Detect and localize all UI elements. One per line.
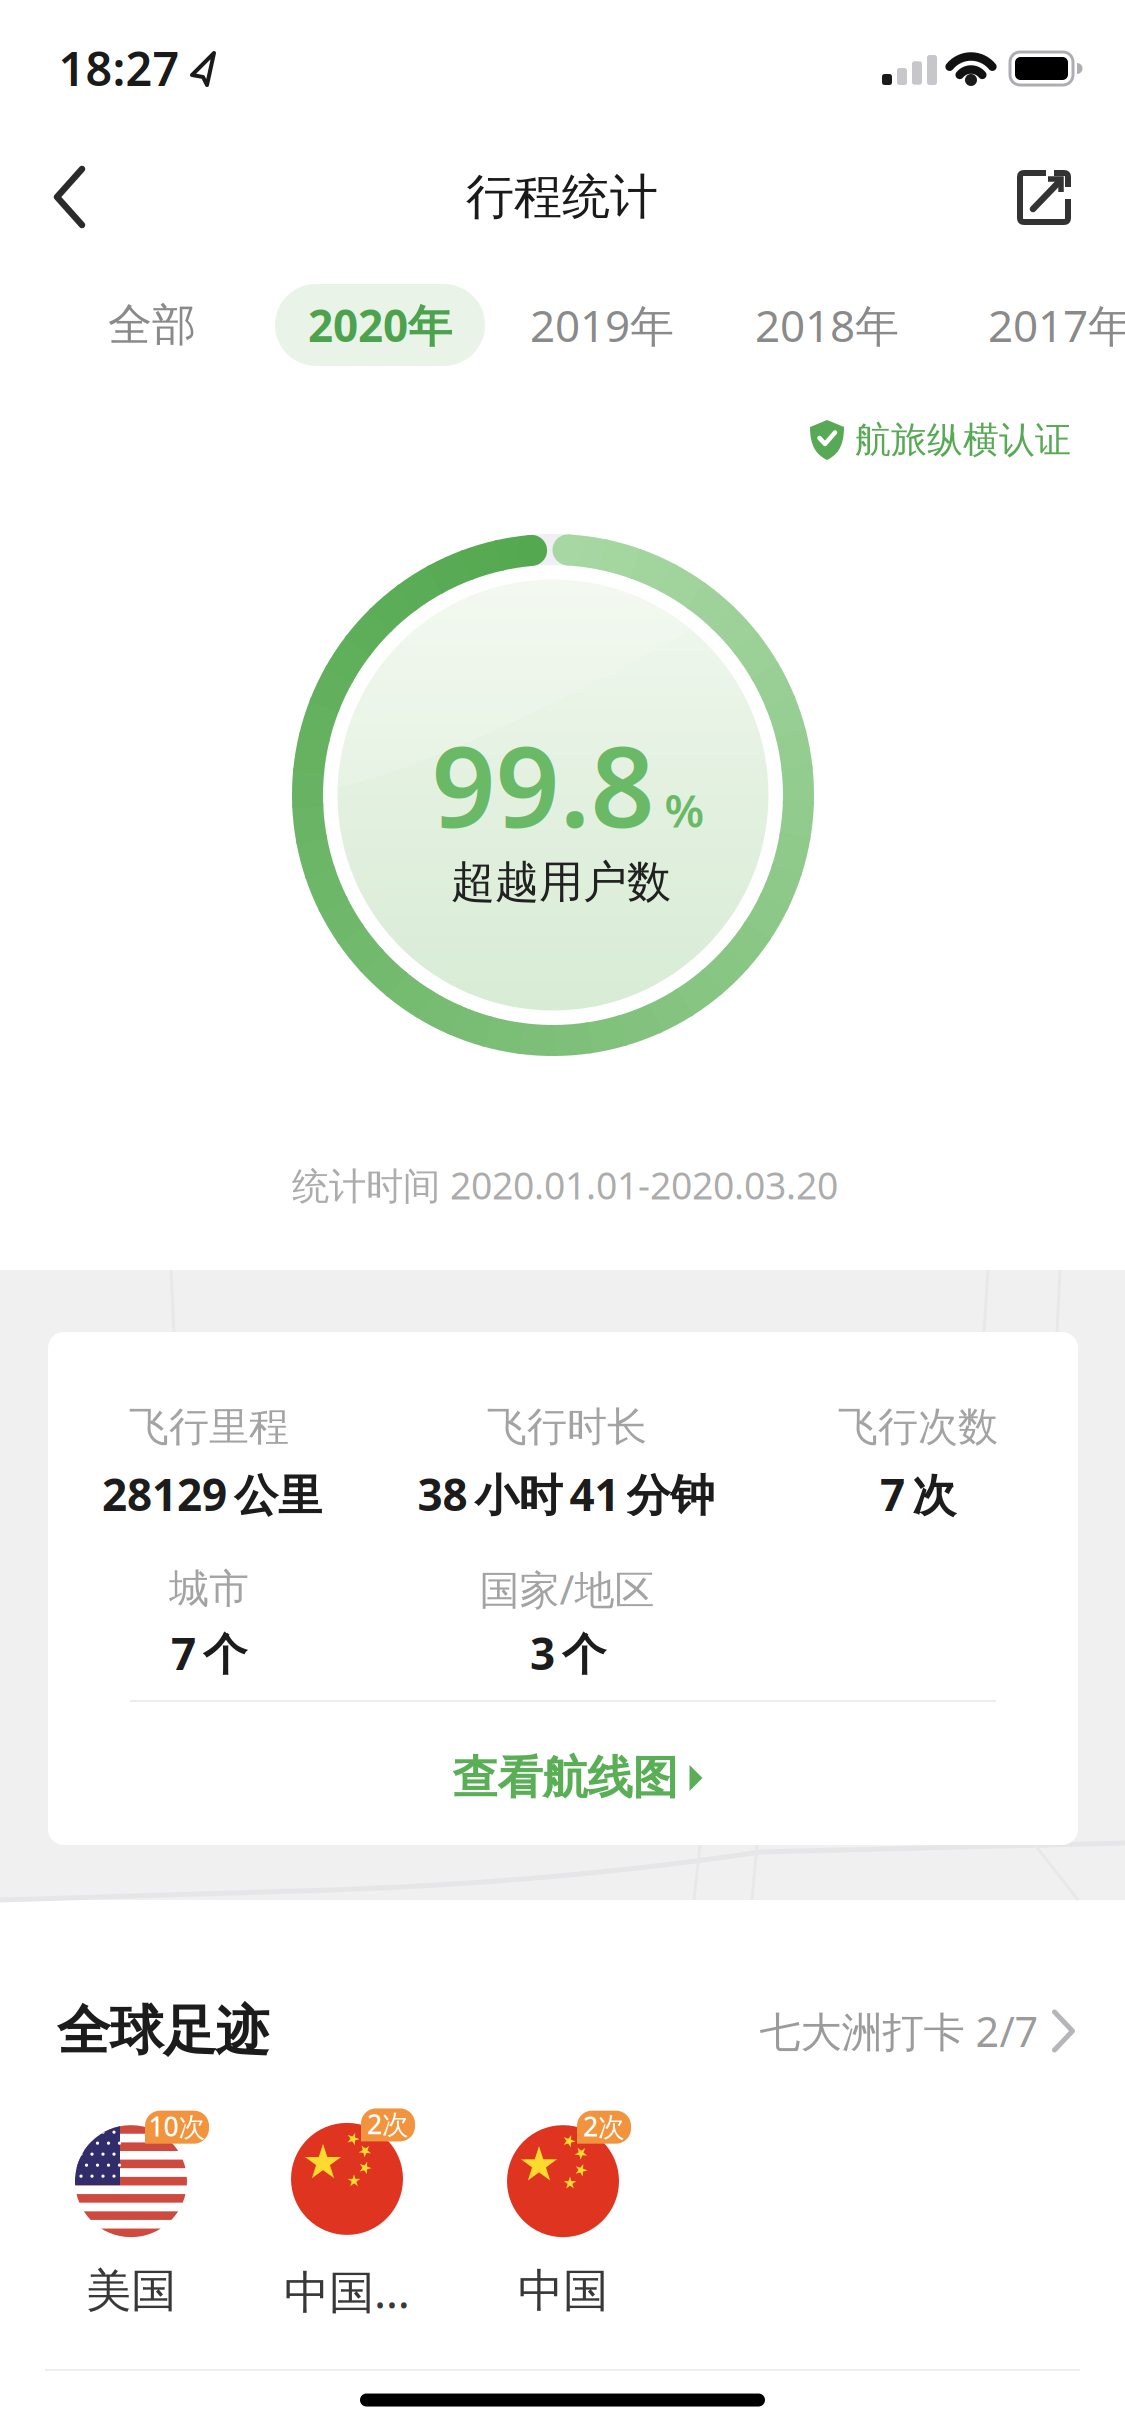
staticText: 3 个 [530, 1624, 606, 1682]
staticText: 7 个 [171, 1624, 247, 1682]
staticText: 查看航线图 [452, 1750, 677, 1806]
staticText: 中国 [518, 2263, 608, 2319]
button[interactable]: Share [1012, 165, 1076, 229]
button[interactable]: 2019年 [512, 283, 692, 367]
button[interactable]: 2018年 [737, 283, 917, 367]
staticText: 2018年 [755, 296, 899, 354]
staticText: 10次 [148, 2108, 205, 2144]
staticText: 18:27 [58, 37, 179, 99]
staticText: 7 次 [880, 1465, 956, 1523]
staticText: 38 小时 41 分钟 [417, 1465, 714, 1523]
staticText: 中国… [284, 2261, 410, 2321]
staticText: 99.8 [431, 710, 654, 858]
staticText: 2次 [367, 2106, 409, 2142]
staticText: 飞行时长 [487, 1402, 647, 1451]
staticText: 全球足迹 [57, 1998, 269, 2064]
staticText: 飞行里程 [129, 1402, 289, 1451]
button[interactable]: 2次 [284, 2123, 410, 2321]
staticText: 28129 公里 [102, 1465, 322, 1523]
staticText: 航旅纵横认证 [855, 418, 1071, 462]
staticText: 2017年 [988, 296, 1125, 354]
staticText: % [664, 780, 704, 840]
button[interactable]: 全部 [82, 283, 222, 367]
button[interactable]: Back [50, 165, 90, 229]
button[interactable]: 查看航线图 [452, 1750, 703, 1806]
button[interactable]: 10次 [75, 2125, 187, 2319]
staticText: 2020年 [308, 296, 452, 354]
staticText: 国家/地区 [479, 1562, 654, 1615]
staticText: 美国 [86, 2263, 176, 2319]
staticText: 2019年 [530, 296, 674, 354]
staticText: 飞行次数 [838, 1402, 998, 1451]
staticText: 超越用户数 [451, 855, 671, 909]
button[interactable]: 2次 [507, 2125, 619, 2319]
staticText: 全部 [108, 298, 196, 352]
button[interactable]: 2020年 [275, 284, 485, 366]
staticText: 2次 [583, 2108, 625, 2144]
staticText: 统计时间 2020.01.01-2020.03.20 [292, 1160, 838, 1210]
staticText: 七大洲打卡 2/7 [759, 2004, 1038, 2058]
button[interactable]: 2017年 [970, 283, 1125, 367]
staticText: 城市 [169, 1564, 249, 1613]
button[interactable]: 七大洲打卡 2/7 [759, 2004, 1074, 2058]
staticText: 行程统计 [466, 167, 658, 226]
